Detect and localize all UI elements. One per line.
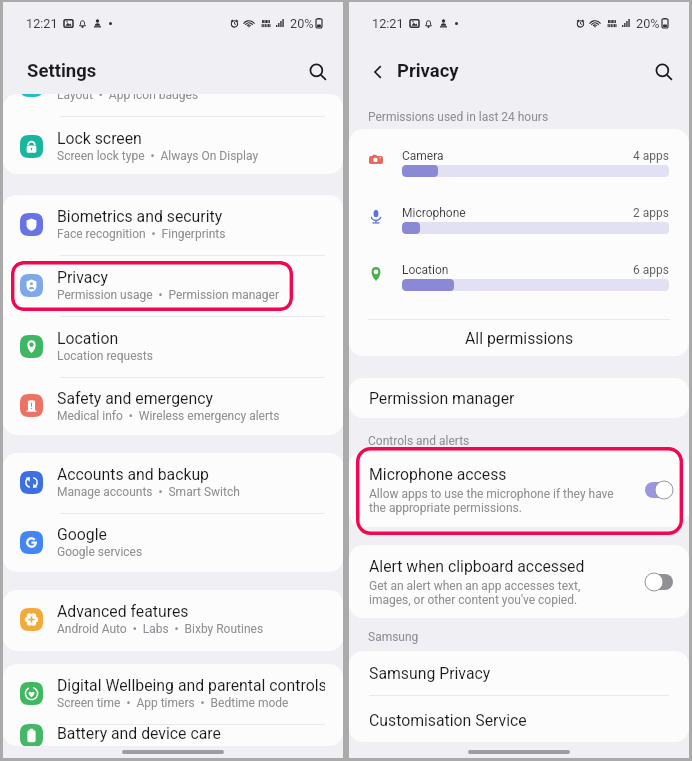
button[interactable]: Privacy: [3, 256, 343, 316]
button[interactable]: Google: [3, 514, 343, 572]
staticText: 12:21: [26, 16, 58, 31]
staticText: Location requests: [57, 349, 153, 363]
staticText: Screen time • App timers • Bedtime mode: [57, 696, 289, 710]
button[interactable]: Notifications: [3, 94, 343, 116]
staticText: Digital Wellbeing and parental controls: [57, 676, 325, 695]
button[interactable]: Samsung Privacy: [349, 651, 689, 695]
staticText: Get an alert when an app accesses text, …: [369, 579, 581, 607]
staticText: All permissions: [465, 329, 574, 348]
button[interactable]: Location: [3, 317, 343, 377]
staticText: 2 apps: [633, 206, 669, 220]
staticText: Alert when clipboard accessed: [369, 557, 585, 576]
button[interactable]: Microphone access: [349, 452, 689, 527]
staticText: Location: [57, 329, 119, 348]
staticText: Medical info • Wireless emergency alerts: [57, 409, 280, 423]
staticText: Face recognition • Fingerprints: [57, 227, 226, 241]
button[interactable]: Digital Wellbeing and parental controls: [3, 664, 343, 724]
staticText: Android Auto • Labs • Bixby Routines: [57, 622, 264, 636]
staticText: Google: [57, 525, 107, 544]
staticText: Permissions used in last 24 hours: [368, 110, 549, 124]
staticText: Privacy: [397, 60, 459, 82]
staticText: Advanced features: [57, 602, 189, 621]
staticText: Layout • App icon badges: [57, 94, 199, 102]
staticText: Customisation Service: [369, 711, 527, 730]
button[interactable]: Biometrics and security: [3, 195, 343, 255]
button[interactable]: Search: [649, 57, 679, 87]
staticText: Controls and alerts: [368, 434, 470, 448]
button[interactable]: Advanced features: [3, 590, 343, 650]
staticText: Privacy: [57, 268, 109, 287]
staticText: Allow apps to use the microphone if they…: [369, 487, 614, 515]
staticText: Samsung Privacy: [369, 664, 491, 683]
button[interactable]: Camera: [349, 129, 689, 186]
staticText: Manage accounts • Smart Switch: [57, 485, 240, 499]
staticText: Camera: [402, 149, 444, 163]
staticText: Location: [402, 263, 449, 277]
button[interactable]: Safety and emergency: [3, 378, 343, 435]
staticText: Google services: [57, 545, 143, 559]
staticText: Screen lock type • Always On Display: [57, 149, 259, 163]
button[interactable]: Search: [303, 57, 333, 87]
button[interactable]: Customisation Service: [349, 696, 689, 742]
staticText: Microphone access: [369, 465, 507, 484]
staticText: Lock screen: [57, 129, 142, 148]
staticText: 20%: [290, 16, 314, 31]
button[interactable]: Permission manager: [349, 378, 689, 418]
button[interactable]: Accounts and backup: [3, 453, 343, 513]
staticText: Microphone: [402, 206, 466, 220]
staticText: Battery and device care: [57, 724, 221, 743]
staticText: Biometrics and security: [57, 207, 223, 226]
staticText: 4 apps: [633, 149, 669, 163]
button[interactable]: Battery and device care: [3, 725, 343, 746]
staticText: Settings: [27, 60, 97, 82]
button[interactable]: All permissions: [349, 320, 689, 356]
button[interactable]: Microphone: [349, 186, 689, 243]
button[interactable]: Back: [363, 57, 393, 87]
button[interactable]: Alert when clipboard accessed: [349, 545, 689, 618]
staticText: 12:21: [372, 16, 404, 31]
staticText: Permission usage • Permission manager: [57, 288, 279, 302]
staticText: 20%: [636, 16, 660, 31]
staticText: Accounts and backup: [57, 465, 209, 484]
staticText: Samsung: [368, 630, 419, 644]
staticText: 6 apps: [633, 263, 669, 277]
button[interactable]: Location: [349, 243, 689, 300]
staticText: Permission manager: [369, 389, 515, 408]
button[interactable]: Lock screen: [3, 117, 343, 174]
staticText: Safety and emergency: [57, 389, 213, 408]
